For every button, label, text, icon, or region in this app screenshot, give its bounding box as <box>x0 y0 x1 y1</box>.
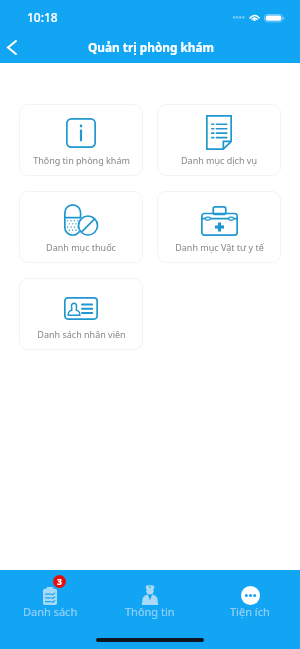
staticText: Quản trị phòng khám <box>88 39 215 55</box>
staticText: 10:18 <box>27 9 58 25</box>
staticText: Danh sách nhân viên <box>37 328 126 340</box>
staticText: Thông tin phòng khám <box>33 154 130 166</box>
button[interactable]: Danh mục Vật tư y tế <box>157 191 281 263</box>
button[interactable]: Thông tin phòng khám <box>19 104 143 176</box>
staticText: Danh mục thuốc <box>46 241 116 253</box>
button[interactable]: Tiện ích <box>200 570 300 622</box>
staticText: Danh mục Vật tư y tế <box>175 241 264 253</box>
button[interactable]: Back <box>0 32 24 62</box>
button[interactable]: Danh mục dịch vụ <box>157 104 281 176</box>
staticText: Danh mục dịch vụ <box>181 154 257 166</box>
button[interactable]: 3 <box>0 570 100 622</box>
button[interactable]: Danh sách nhân viên <box>19 278 143 350</box>
staticText: Danh sách <box>23 604 78 619</box>
staticText: Thông tin <box>125 604 175 619</box>
button[interactable]: Thông tin <box>100 570 200 622</box>
staticText: 3 <box>57 576 62 588</box>
staticText: Tiện ích <box>230 604 270 619</box>
button[interactable]: Danh mục thuốc <box>19 191 143 263</box>
